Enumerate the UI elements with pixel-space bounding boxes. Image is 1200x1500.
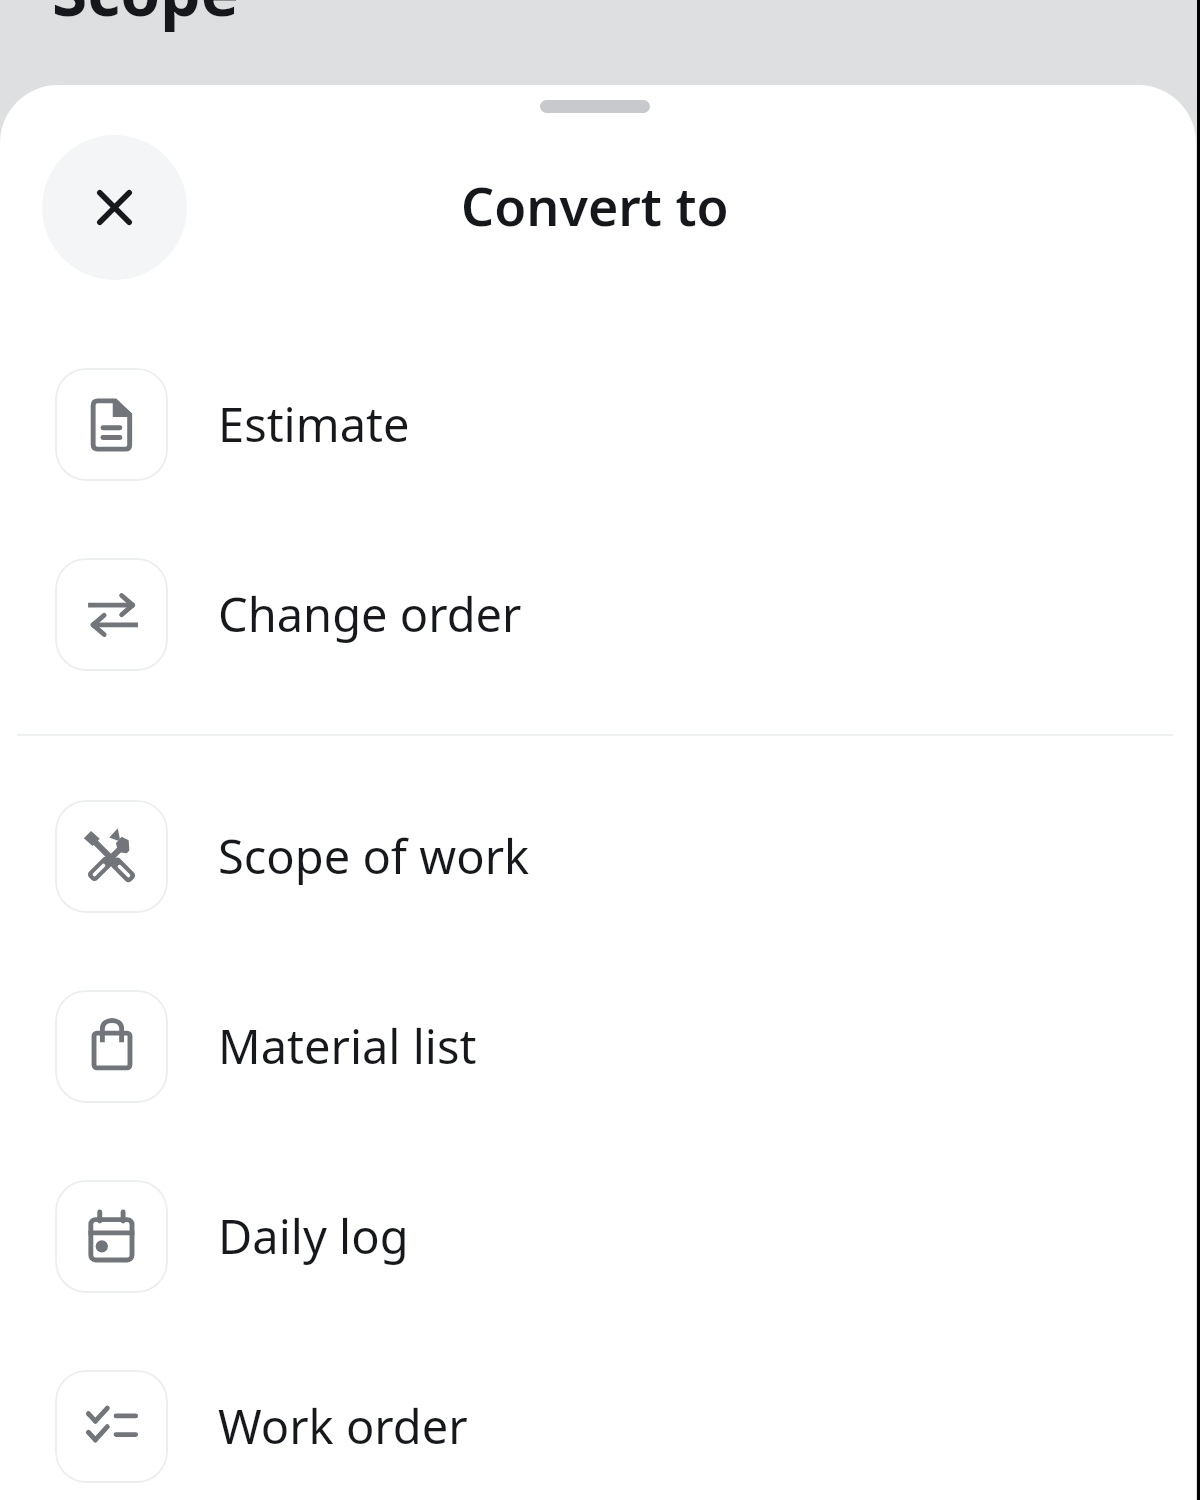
staticText: Change order <box>218 582 522 646</box>
button[interactable]: Close <box>42 135 187 280</box>
button[interactable]: Material list <box>0 951 1196 1141</box>
staticText: Daily log <box>218 1204 409 1268</box>
button[interactable]: Work order <box>0 1331 1196 1500</box>
staticText: Scope <box>52 0 239 35</box>
staticText: Convert to <box>461 170 729 241</box>
button[interactable]: Daily log <box>0 1141 1196 1331</box>
staticText: Scope of work <box>218 824 530 888</box>
staticText: Work order <box>218 1394 468 1458</box>
button[interactable]: Scope of work <box>0 761 1196 951</box>
staticText: Estimate <box>218 392 410 456</box>
button[interactable]: Estimate <box>0 329 1196 519</box>
staticText: Material list <box>218 1014 477 1078</box>
button[interactable]: Change order <box>0 519 1196 709</box>
